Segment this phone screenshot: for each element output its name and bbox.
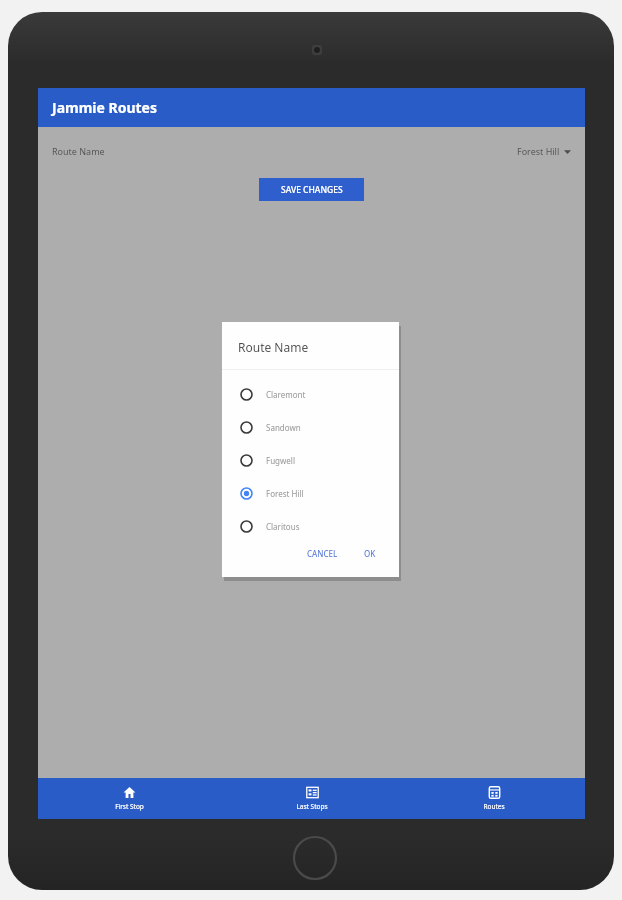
button[interactable]: SAVE CHANGES bbox=[259, 178, 364, 201]
staticText: Route Name bbox=[52, 145, 105, 157]
staticText: First Stop bbox=[115, 802, 144, 811]
button[interactable]: Jammie Routes bbox=[38, 88, 585, 127]
staticText: Claremont bbox=[266, 389, 306, 400]
button[interactable]: CANCEL bbox=[301, 544, 344, 563]
button[interactable]: Claritous bbox=[222, 510, 399, 543]
staticText: Jammie Routes bbox=[52, 98, 157, 117]
staticText: Forest Hill bbox=[266, 488, 304, 499]
staticText: SAVE CHANGES bbox=[281, 184, 343, 196]
staticText: Sandown bbox=[266, 422, 301, 433]
staticText: Last Stops bbox=[296, 802, 328, 811]
button[interactable]: Claremont bbox=[222, 378, 399, 411]
button[interactable]: Fugwell bbox=[222, 444, 399, 477]
staticText: Forest Hill bbox=[517, 145, 560, 157]
staticText: Route Name bbox=[238, 339, 309, 355]
staticText: OK bbox=[364, 548, 376, 559]
button[interactable]: First Stop bbox=[38, 778, 221, 819]
button[interactable]: Route Name bbox=[52, 145, 571, 157]
staticText: Routes bbox=[483, 802, 505, 811]
button[interactable]: Last Stops bbox=[221, 778, 403, 819]
button[interactable]: Sandown bbox=[222, 411, 399, 444]
staticText: Claritous bbox=[266, 521, 300, 532]
button[interactable]: OK bbox=[358, 544, 382, 563]
button[interactable]: Routes bbox=[403, 778, 585, 819]
staticText: CANCEL bbox=[307, 548, 338, 559]
staticText: Fugwell bbox=[266, 455, 295, 466]
button[interactable]: Forest Hill bbox=[222, 477, 399, 510]
